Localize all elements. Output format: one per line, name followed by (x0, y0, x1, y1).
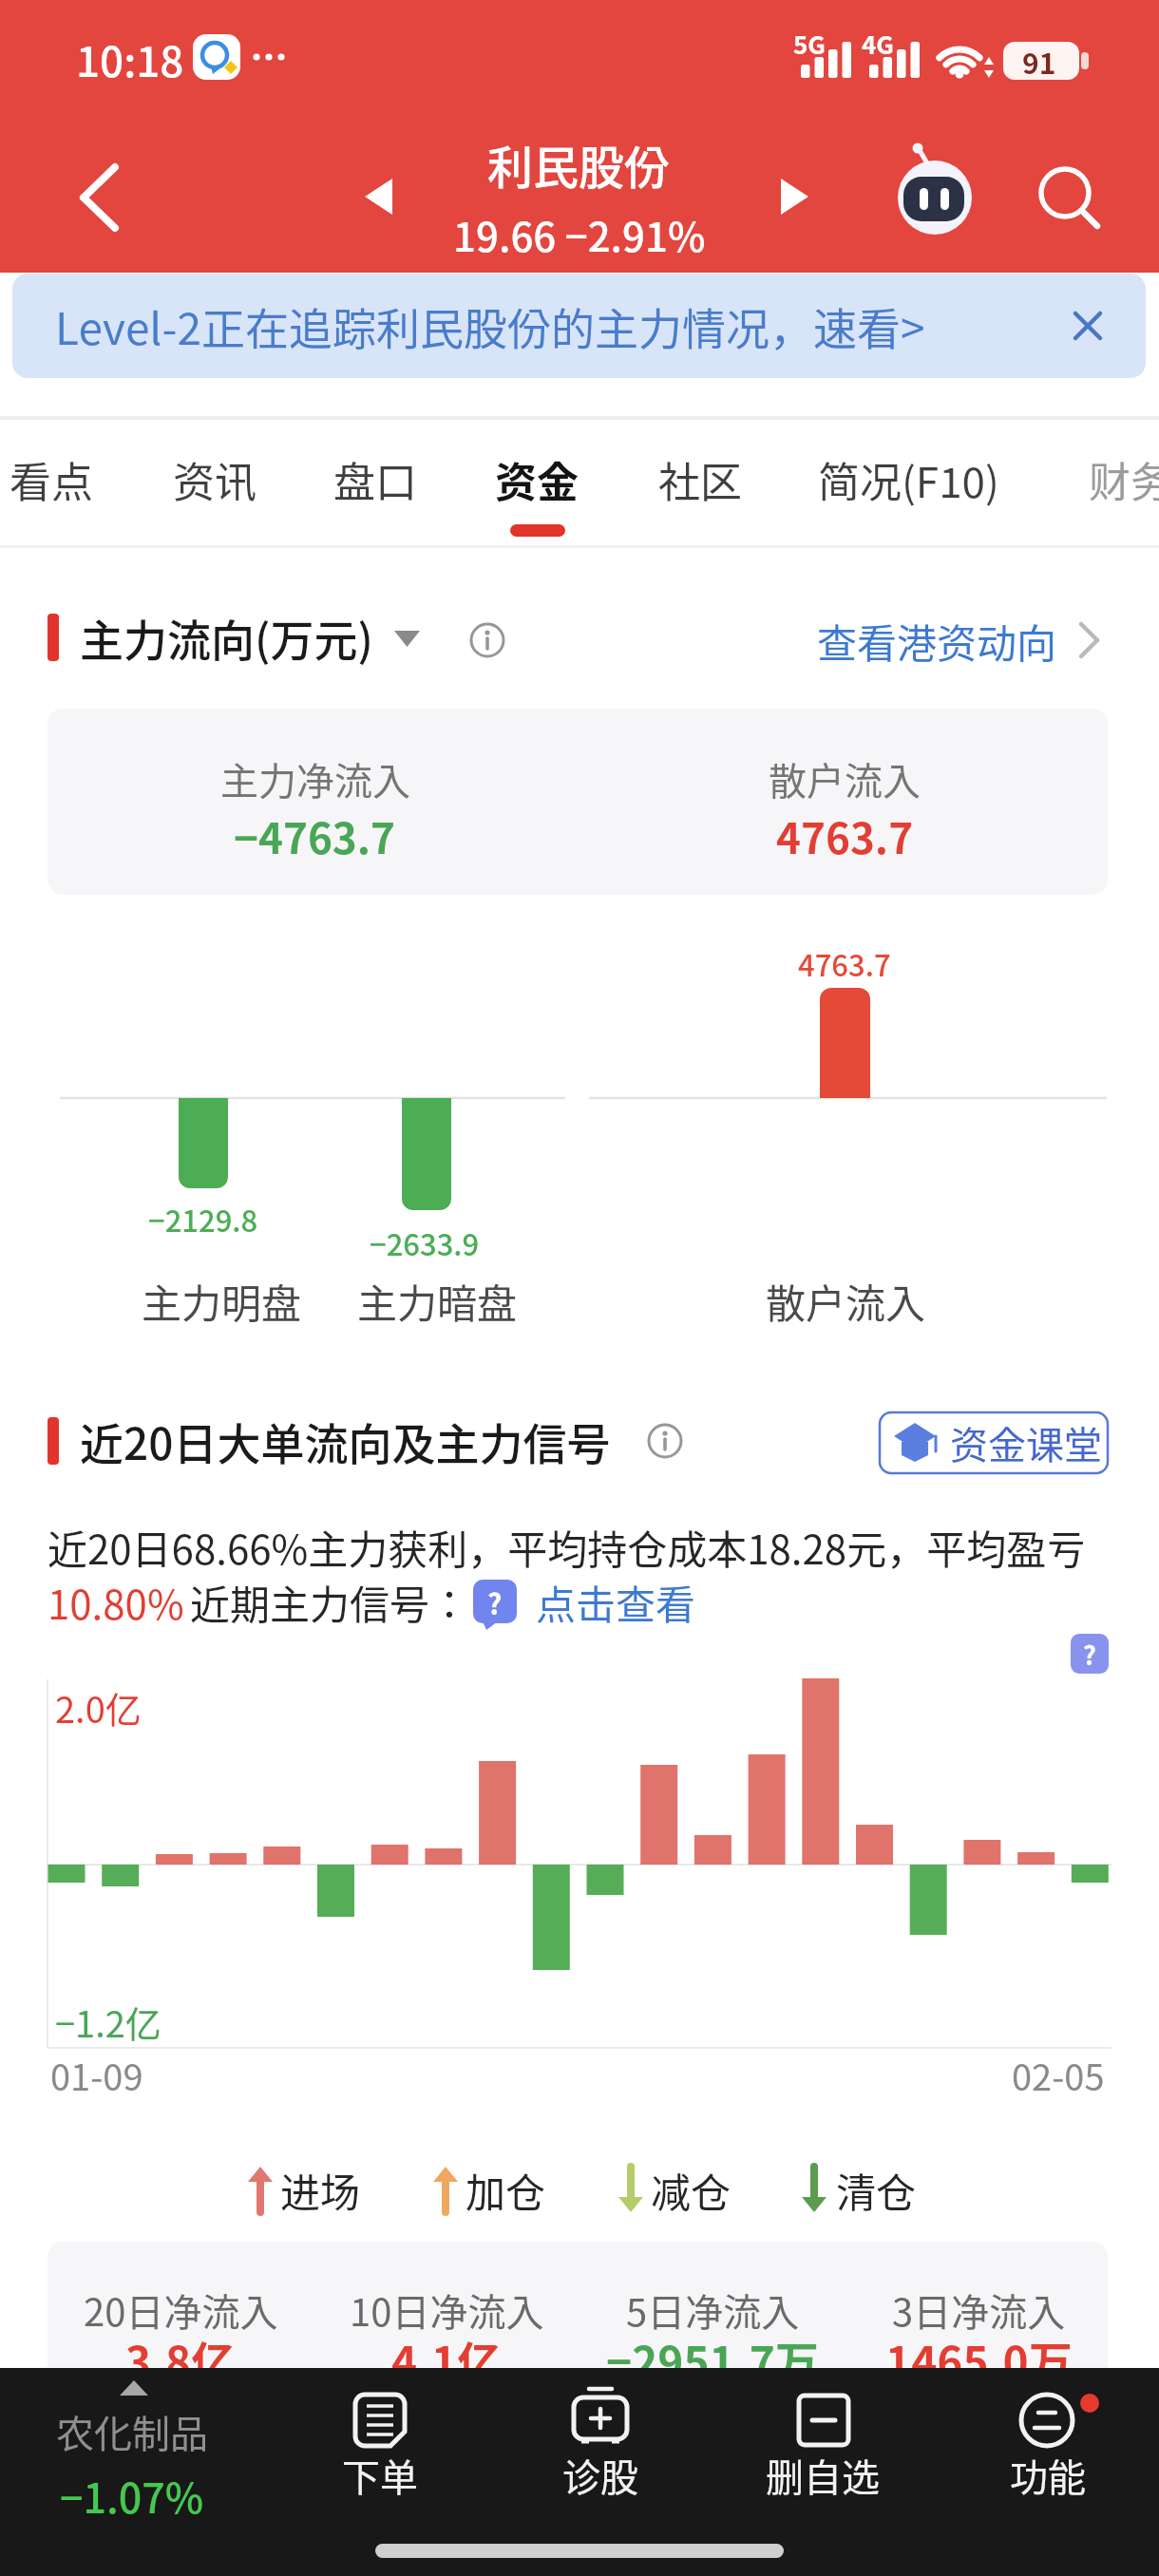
button[interactable] (1064, 1628, 1115, 1679)
staticText: −1.07% (60, 2466, 204, 2525)
staticText: 功能 (1010, 2448, 1086, 2503)
button[interactable] (1045, 285, 1130, 366)
button[interactable] (880, 1412, 1108, 1473)
button[interactable] (148, 421, 281, 544)
staticText: 5日净流入 (626, 2282, 800, 2338)
staticText: 10.80% (47, 1573, 184, 1631)
staticText: 19.66 −2.91% (453, 205, 706, 263)
staticText: 4.1亿 (391, 2328, 502, 2392)
staticText: 近20日大单流向及主力信号 (80, 1410, 611, 1473)
staticText: 3日净流入 (892, 2282, 1066, 2338)
staticText: 下单 (342, 2448, 418, 2503)
button[interactable] (1045, 421, 1159, 544)
staticText: 资金 (495, 449, 579, 510)
staticText: 主力明盘 (142, 1272, 302, 1330)
staticText: 清仓 (836, 2161, 917, 2219)
staticText: 盘口 (333, 449, 417, 510)
button[interactable] (470, 421, 603, 544)
button[interactable] (950, 2370, 1145, 2550)
staticText: 看点 (9, 449, 93, 510)
staticText: 10:18 (76, 28, 184, 89)
button[interactable] (28, 2370, 237, 2550)
staticText: 3.8亿 (125, 2328, 236, 2392)
staticText: 主力暗盘 (357, 1272, 518, 1330)
staticText: 01-09 (50, 2049, 143, 2101)
staticText: 散户流入 (769, 751, 921, 806)
staticText: 财务 (1089, 449, 1159, 510)
staticText: −4763.7 (234, 805, 396, 866)
staticText: 02-05 (1012, 2049, 1105, 2101)
button[interactable] (528, 1572, 718, 1631)
button[interactable] (309, 421, 442, 544)
button[interactable] (798, 421, 1016, 544)
staticText: 社区 (658, 449, 742, 510)
button[interactable] (52, 142, 157, 252)
staticText: 利民股份 (487, 131, 671, 198)
staticText: 主力流向(万元) (80, 606, 373, 670)
staticText: 加仓 (465, 2161, 546, 2219)
staticText: 诊股 (562, 2448, 638, 2503)
staticText: 4763.7 (776, 805, 914, 866)
button[interactable] (12, 274, 1146, 378)
staticText: 散户流入 (766, 1272, 926, 1330)
staticText: 近期主力信号： (190, 1573, 470, 1631)
staticText: 查看港资动向 (817, 612, 1057, 670)
staticText: Level-2正在追踪利民股份的主力情况，速看> (55, 294, 925, 358)
staticText: 1465.0万 (885, 2328, 1073, 2392)
staticText: −2633.9 (370, 1222, 480, 1264)
staticText: ? (487, 1582, 503, 1622)
staticText: 资讯 (173, 449, 256, 510)
button[interactable] (728, 2370, 918, 2550)
staticText: 4G (862, 26, 894, 62)
button[interactable] (822, 604, 1107, 676)
staticText: 5G (793, 26, 826, 62)
staticText: 91 (1022, 41, 1056, 82)
staticText: −2129.8 (148, 1198, 258, 1241)
button[interactable] (0, 421, 123, 544)
staticText: 减仓 (651, 2161, 731, 2219)
staticText: 资金课堂 (950, 1415, 1102, 1470)
staticText: 删自选 (766, 2448, 880, 2503)
staticText: 20日净流入 (84, 2282, 278, 2338)
staticText: 点击查看 (536, 1573, 696, 1631)
button[interactable] (505, 2370, 695, 2550)
button[interactable] (76, 598, 427, 679)
staticText: 进场 (280, 2161, 361, 2219)
staticText: 10日净流入 (350, 2282, 544, 2338)
staticText: 4763.7 (798, 942, 891, 985)
staticText: −1.2亿 (55, 1996, 161, 2048)
button[interactable] (465, 1572, 522, 1629)
staticText: 简况(F10) (818, 449, 999, 510)
staticText: ? (1083, 1636, 1096, 1673)
staticText: 2.0亿 (55, 1681, 142, 1733)
staticText: 近20日68.66%主力获利，平均持仓成本18.28元，平均盈亏 (47, 1518, 1087, 1576)
button[interactable] (634, 421, 767, 544)
staticText: −2951.7万 (606, 2328, 819, 2392)
button[interactable] (891, 154, 978, 241)
staticText: 主力净流入 (220, 751, 410, 806)
button[interactable] (285, 2370, 475, 2550)
button[interactable] (1024, 155, 1108, 238)
staticText: 农化制品 (56, 2404, 208, 2459)
